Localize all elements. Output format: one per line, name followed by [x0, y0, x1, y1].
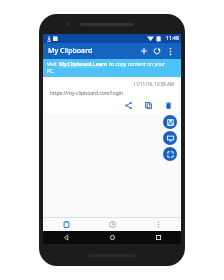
staticText: 11/11/16, 10:58 AM: [50, 81, 174, 87]
button[interactable]: 11/11/16, 10:58 AM: [46, 79, 178, 114]
button[interactable]: Back: [43, 231, 89, 244]
staticText: My Clipboard: [48, 46, 93, 56]
button[interactable]: Scan: [163, 147, 177, 161]
staticText: Visit: [47, 61, 59, 68]
staticText: PC.: [47, 68, 55, 75]
staticText: 11:48: [166, 35, 179, 42]
button[interactable]: History: [89, 218, 135, 231]
button[interactable]: Visit: [43, 59, 181, 77]
button[interactable]: Add: [138, 45, 150, 57]
button[interactable]: Delete: [163, 100, 174, 111]
button[interactable]: Send to PC: [163, 131, 177, 145]
button[interactable]: Refresh: [151, 45, 163, 57]
button[interactable]: Copy: [143, 100, 154, 111]
button[interactable]: Clipboard: [43, 218, 89, 231]
staticText: My.Clipboard.Learn: [59, 61, 108, 68]
button[interactable]: Share: [123, 100, 134, 111]
button[interactable]: Home: [89, 231, 135, 244]
button[interactable]: More options: [164, 45, 176, 57]
staticText: to copy content on your: [108, 61, 166, 68]
button[interactable]: Recent apps: [135, 231, 181, 244]
button[interactable]: More: [135, 218, 181, 231]
button[interactable]: Save to clipboard: [163, 115, 177, 129]
staticText: https://my-clipboard.com/login: [50, 90, 124, 97]
